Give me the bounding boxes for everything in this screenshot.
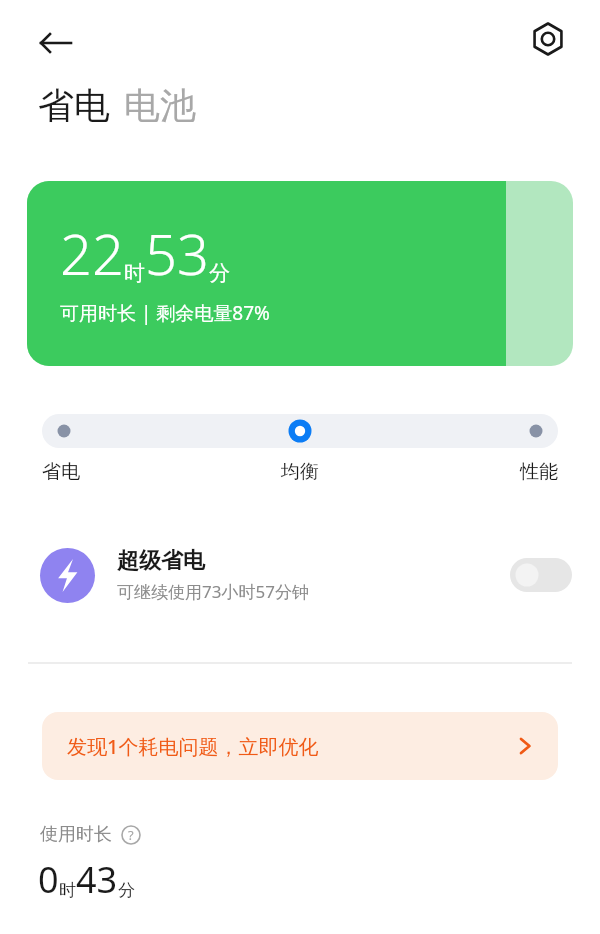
button[interactable]: Performance mode slider bbox=[42, 414, 558, 448]
staticText: 超级省电 bbox=[117, 547, 205, 575]
button[interactable]: Super power saving toggle bbox=[510, 558, 572, 592]
staticText: 时 bbox=[124, 260, 145, 286]
staticText: 22 bbox=[60, 215, 124, 291]
staticText: 53 bbox=[145, 215, 209, 291]
staticText: 可继续使用73小时57分钟 bbox=[117, 580, 309, 603]
staticText: 0 bbox=[38, 855, 59, 904]
staticText: 电池 bbox=[124, 83, 196, 128]
staticText: 性能 bbox=[386, 460, 558, 484]
staticText: 均衡 bbox=[214, 460, 386, 484]
staticText: 分 bbox=[209, 260, 230, 286]
staticText: 43 bbox=[76, 855, 118, 904]
staticText: 使用时长 bbox=[40, 823, 112, 846]
staticText: 分 bbox=[118, 880, 135, 901]
button[interactable]: 22 bbox=[27, 181, 573, 366]
staticText: 时 bbox=[59, 880, 76, 901]
button[interactable]: 超级省电 bbox=[0, 533, 600, 617]
staticText: 发现1个耗电问题，立即优化 bbox=[67, 733, 319, 760]
staticText: 省电 bbox=[42, 460, 214, 484]
staticText: 省电 bbox=[38, 83, 110, 128]
staticText: 可用时长 | 剩余电量87% bbox=[60, 300, 270, 326]
staticText: ? bbox=[128, 826, 134, 844]
button[interactable]: Settings bbox=[522, 13, 574, 65]
button[interactable]: Help about usage duration bbox=[121, 825, 141, 845]
button[interactable]: Back bbox=[30, 17, 82, 69]
button[interactable]: 发现1个耗电问题，立即优化 bbox=[42, 712, 558, 780]
